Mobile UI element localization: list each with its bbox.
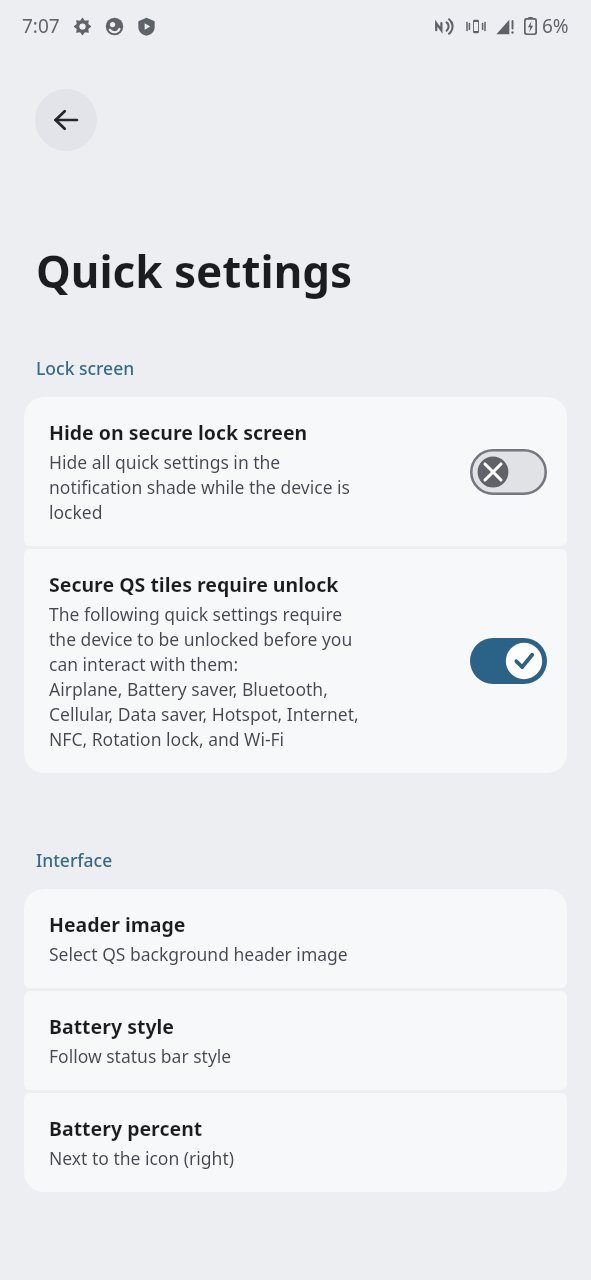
staticText: Quick settings (36, 241, 353, 301)
button[interactable]: Header image (24, 889, 567, 988)
staticText: Next to the icon (right) (49, 1145, 234, 1170)
staticText: The following quick settings require the… (49, 601, 359, 751)
staticText: 7:07 (22, 13, 60, 39)
staticText: Hide all quick settings in the notificat… (49, 449, 350, 524)
button[interactable]: Battery percent (24, 1093, 567, 1192)
staticText: Select QS background header image (49, 941, 348, 966)
button[interactable]: On (470, 638, 547, 684)
button[interactable]: Off (470, 449, 547, 495)
staticText: Hide on secure lock screen (49, 419, 308, 446)
staticText: Lock screen (36, 356, 135, 380)
staticText: Interface (36, 848, 113, 872)
staticText: Header image (49, 911, 186, 938)
staticText: Battery style (49, 1013, 174, 1040)
button[interactable]: Hide on secure lock screen (24, 397, 567, 546)
button[interactable]: Secure QS tiles require unlock (24, 549, 567, 773)
staticText: Secure QS tiles require unlock (49, 571, 339, 598)
staticText: Follow status bar style (49, 1043, 232, 1068)
button[interactable]: Battery style (24, 991, 567, 1090)
button[interactable]: Back (35, 89, 97, 151)
staticText: 6% (542, 13, 569, 39)
staticText: Battery percent (49, 1115, 203, 1142)
